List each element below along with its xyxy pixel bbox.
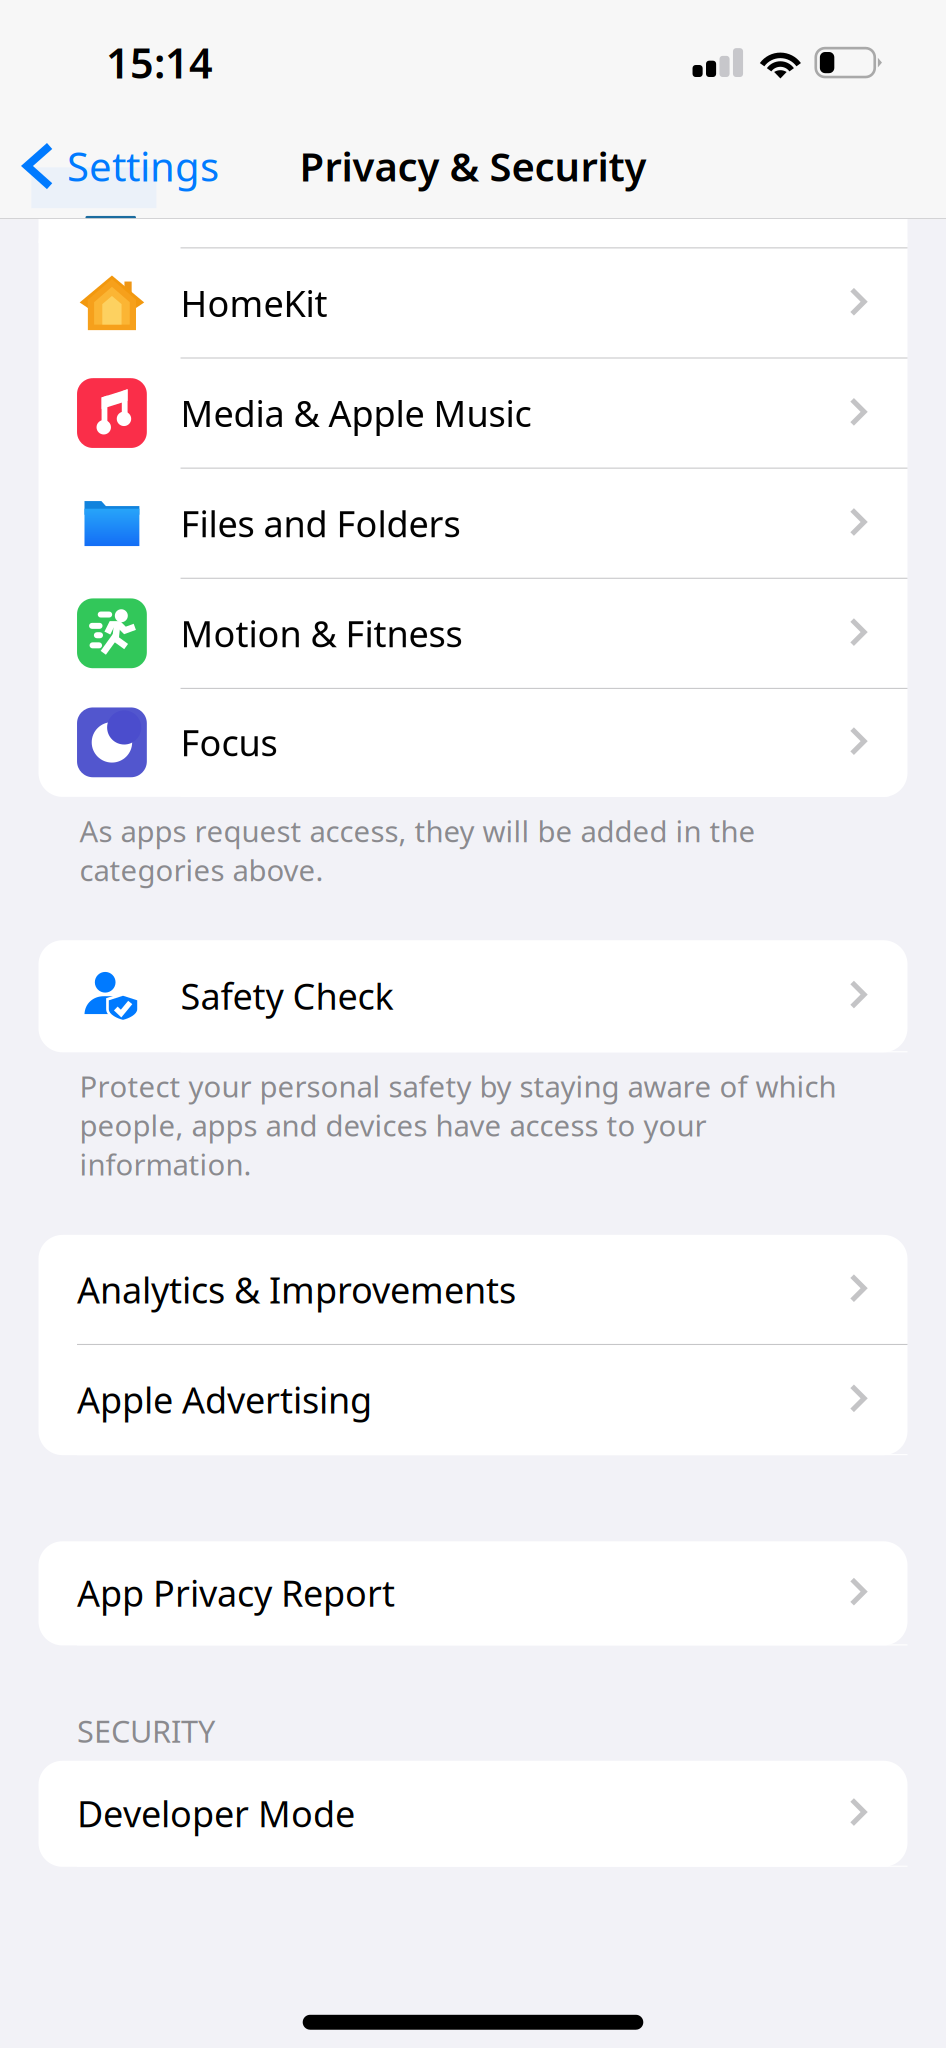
staticText: As apps request access, they will be add… (79, 811, 755, 889)
button[interactable]: Apple Advertising (38, 1345, 907, 1455)
staticText: Safety Check (180, 972, 393, 1020)
button[interactable]: Media & Apple Music (38, 358, 907, 469)
staticText: App Privacy Report (77, 1569, 395, 1617)
staticText: Settings (67, 139, 219, 193)
staticText: Files and Folders (180, 499, 460, 547)
staticText: 15:14 (106, 35, 213, 90)
button[interactable]: Files and Folders (38, 469, 907, 579)
button[interactable]: HomeKit (38, 248, 907, 358)
staticText: HomeKit (180, 279, 327, 327)
button[interactable]: Safety Check (38, 940, 907, 1052)
button[interactable]: Focus (38, 689, 907, 797)
staticText: Analytics & Improvements (77, 1265, 516, 1313)
button[interactable]: Developer Mode (38, 1761, 907, 1867)
button[interactable]: Analytics & Improvements (38, 1235, 907, 1345)
staticText: SECURITY (77, 1710, 215, 1751)
staticText: Developer Mode (77, 1789, 355, 1837)
button[interactable]: App Privacy Report (38, 1541, 907, 1645)
button[interactable]: Motion & Fitness (38, 579, 907, 689)
staticText: Privacy & Security (299, 139, 646, 193)
staticText: Focus (180, 718, 277, 766)
staticText: Media & Apple Music (180, 389, 531, 437)
staticText: Apple Advertising (77, 1376, 372, 1423)
staticText: Motion & Fitness (180, 609, 462, 657)
button[interactable]: Settings (0, 125, 238, 207)
staticText: Protect your personal safety by staying … (79, 1067, 836, 1184)
